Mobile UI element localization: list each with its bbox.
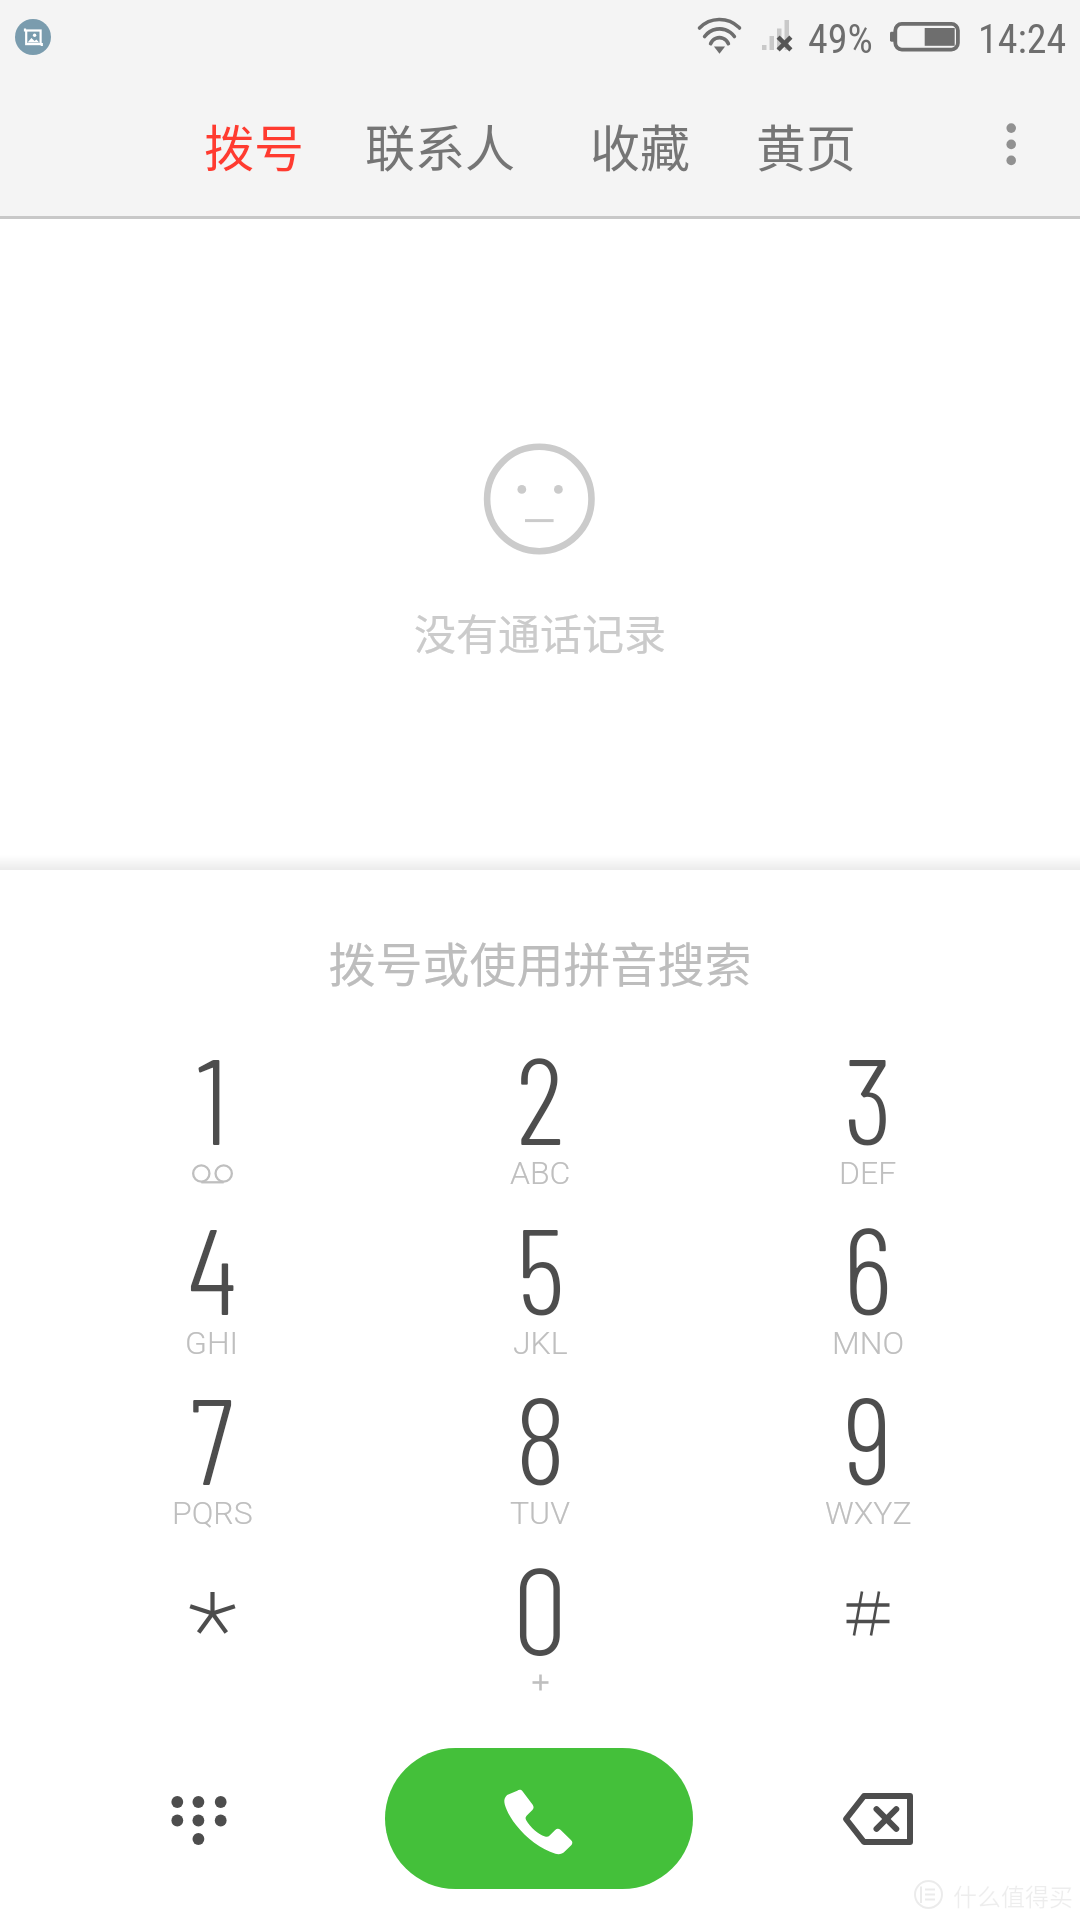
staticText: 7 [190, 1363, 234, 1509]
staticText: 收藏 [590, 109, 690, 181]
button[interactable]: 拨号 [189, 90, 319, 200]
button[interactable]: 联系人 [350, 90, 530, 200]
staticText: 4 [188, 1193, 237, 1339]
button[interactable]: 1 [49, 996, 375, 1166]
staticText: 拨号或使用拼音搜索 [0, 927, 1080, 995]
staticText: 5 [516, 1193, 565, 1339]
button[interactable]: 6 [705, 1166, 1031, 1336]
button[interactable]: Hide dialpad [81, 1748, 317, 1890]
staticText: PQRS [172, 1494, 253, 1532]
button[interactable]: 5 [377, 1166, 703, 1336]
button[interactable]: More options [969, 102, 1053, 186]
button[interactable]: 7 [49, 1336, 375, 1506]
button[interactable]: 4 [49, 1166, 375, 1336]
button[interactable]: 2 [377, 996, 703, 1166]
staticText: 0 [513, 1533, 567, 1679]
staticText: 14:24 [978, 16, 1067, 63]
button[interactable]: 0 [377, 1506, 703, 1676]
staticText: 1 [197, 1023, 228, 1169]
staticText: 联系人 [365, 109, 515, 181]
button[interactable]: 8 [377, 1336, 703, 1506]
button[interactable]: Call [385, 1748, 693, 1889]
staticText: 6 [843, 1193, 893, 1339]
button[interactable]: 收藏 [575, 90, 705, 200]
staticText: ABC [510, 1154, 571, 1192]
button[interactable]: 9 [705, 1336, 1031, 1506]
staticText: 什么值得买 [953, 1878, 1073, 1913]
staticText: GHI [185, 1324, 239, 1362]
staticText: DEF [839, 1154, 897, 1192]
staticText: MNO [832, 1324, 905, 1362]
button[interactable]: Delete [760, 1748, 996, 1890]
staticText: 3 [844, 1023, 893, 1169]
button[interactable]: 黄页 [741, 90, 871, 200]
staticText: JKL [513, 1324, 568, 1362]
staticText: 9 [844, 1363, 893, 1509]
staticText: 拨号 [204, 109, 304, 181]
staticText: 2 [516, 1023, 564, 1169]
button[interactable]: 3 [705, 996, 1031, 1166]
staticText: 黄页 [756, 109, 856, 181]
button[interactable] [705, 1506, 1031, 1676]
staticText: 49% [808, 16, 873, 63]
staticText: TUV [510, 1494, 570, 1532]
staticText: 8 [515, 1363, 566, 1509]
staticText: 没有通话记录 [0, 601, 1080, 662]
staticText: WXYZ [825, 1494, 912, 1532]
button[interactable] [49, 1506, 375, 1676]
